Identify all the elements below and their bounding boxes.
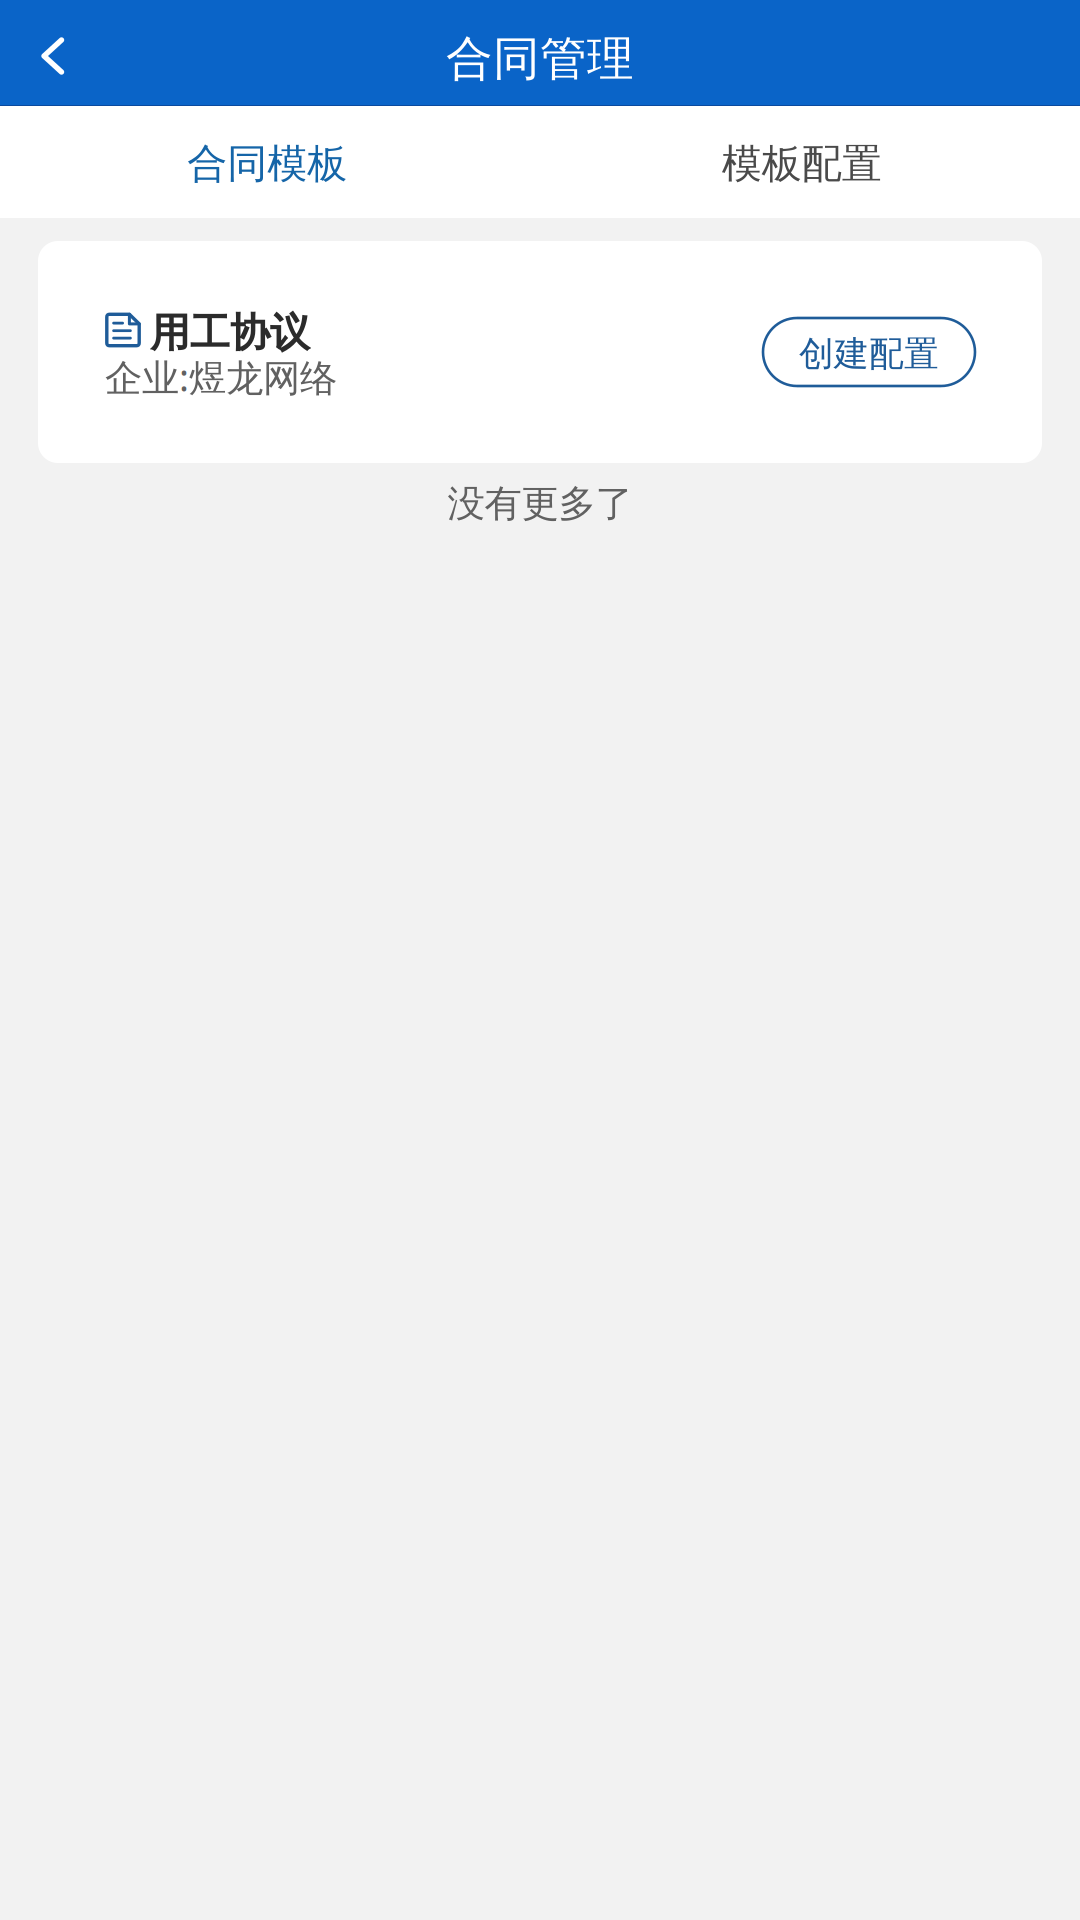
staticText: 合同模板 [187,139,347,188]
staticText: 模板配置 [722,139,882,188]
staticText: 没有更多了 [447,481,632,527]
button[interactable]: 合同模板 [0,106,534,218]
staticText: 合同管理 [446,30,634,88]
staticText: 企业:煜龙网络 [105,352,337,402]
button[interactable]: 模板配置 [534,106,1069,218]
button[interactable]: 用工协议 [38,241,1042,463]
staticText: 用工协议 [150,308,310,357]
button[interactable]: Back [0,0,95,106]
staticText: 创建配置 [799,333,939,375]
button[interactable]: 创建配置 [763,318,975,386]
